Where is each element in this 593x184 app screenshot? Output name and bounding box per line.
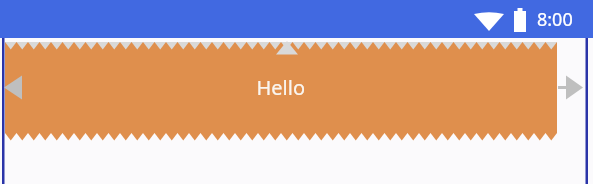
button[interactable]: Hello panel screen <box>0 0 593 184</box>
